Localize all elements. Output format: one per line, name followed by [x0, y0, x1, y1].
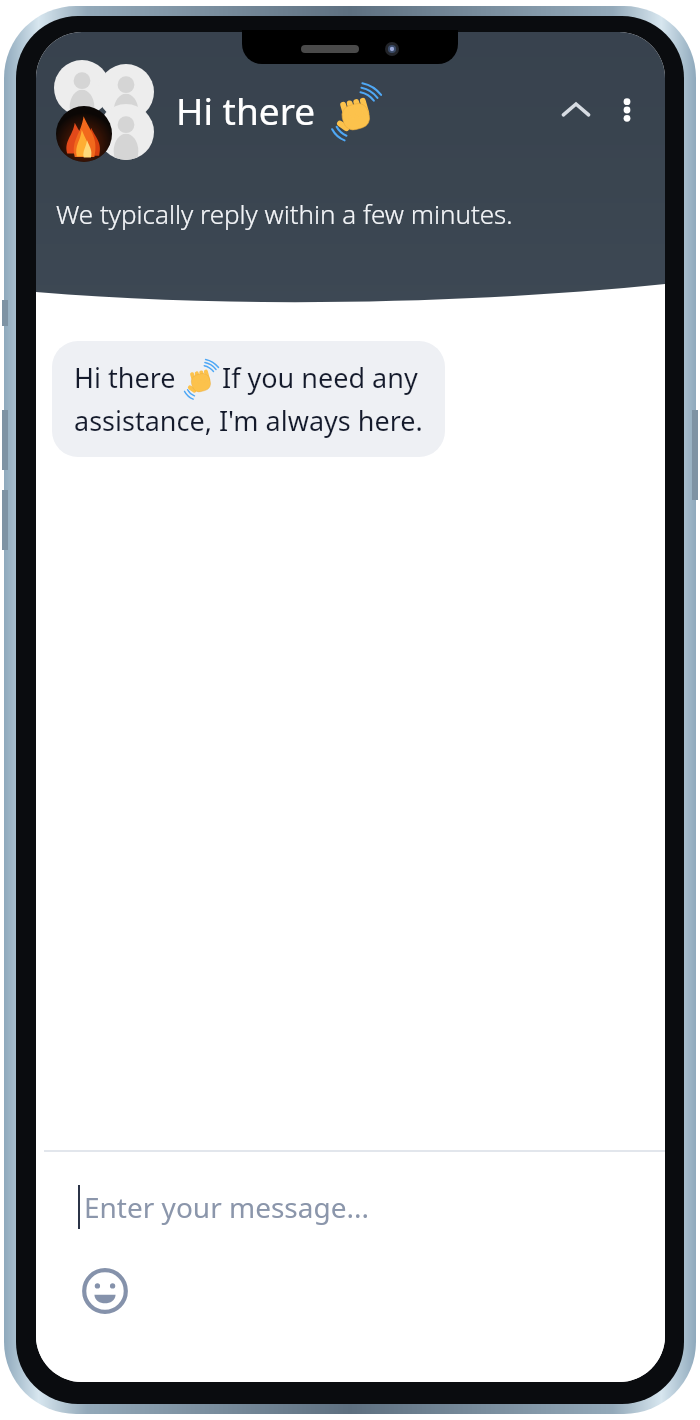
button[interactable]: More options: [603, 86, 651, 134]
button[interactable]: Hi there: [52, 341, 445, 457]
button[interactable]: Enter your message...: [36, 1152, 665, 1262]
staticText: We typically reply within a few minutes.: [56, 196, 513, 231]
button[interactable]: Collapse: [549, 83, 603, 137]
button[interactable]: Emoji: [76, 1262, 134, 1320]
staticText: Hi there: [176, 85, 316, 135]
staticText: If you need any: [215, 359, 418, 396]
staticText: Hi there: [74, 359, 183, 396]
staticText: Enter your message...: [84, 1188, 370, 1226]
staticText: assistance, I'm always here.: [74, 402, 423, 439]
